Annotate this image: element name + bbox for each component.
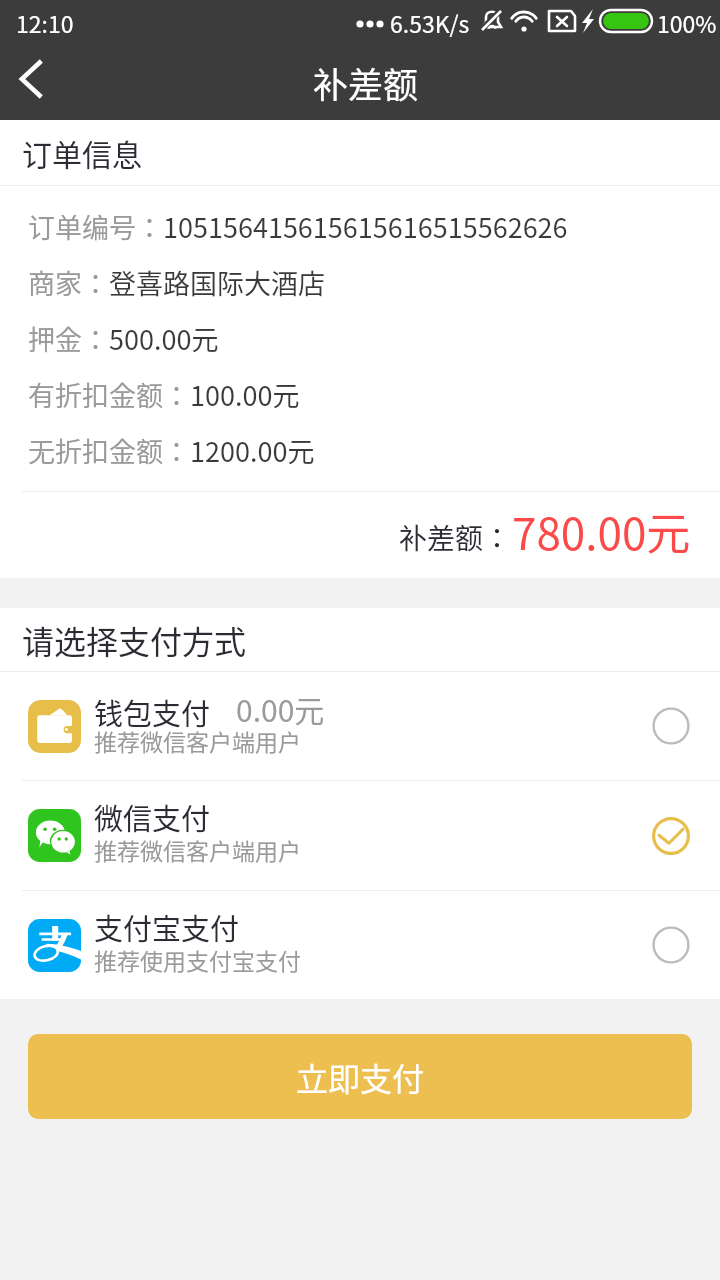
staticText: 6.53K/s — [390, 6, 470, 39]
button[interactable]: 支付宝支付 — [0, 891, 720, 999]
staticText: 订单信息 — [22, 131, 142, 174]
staticText: 支付宝支付 — [94, 906, 240, 948]
staticText: 12:10 — [16, 6, 74, 39]
staticText: 订单编号： — [28, 207, 163, 246]
staticText: 商家： — [28, 263, 109, 302]
button[interactable]: 立即支付 — [28, 1034, 692, 1119]
staticText: 登喜路国际大酒店 — [109, 263, 325, 302]
staticText: 有折扣金额： — [28, 375, 190, 414]
staticText: 1200.00元 — [190, 431, 315, 470]
staticText: 请选择支付方式 — [22, 617, 247, 663]
button[interactable]: 钱包支付 — [0, 672, 720, 780]
staticText: 100.00元 — [190, 375, 300, 414]
staticText: 推荐使用支付宝支付 — [94, 943, 301, 976]
staticText: 100% — [657, 6, 717, 39]
button[interactable]: 微信支付 — [0, 781, 720, 890]
staticText: 推荐微信客户端用户 — [94, 724, 301, 757]
staticText: 无折扣金额： — [28, 431, 190, 470]
staticText: 0.00元 — [236, 687, 325, 730]
staticText: 500.00元 — [109, 319, 219, 358]
staticText: 105156415615615616515562626 — [163, 207, 568, 246]
staticText: 微信支付 — [94, 796, 211, 838]
staticText: 补差额 — [313, 57, 419, 108]
staticText: 补差额： — [399, 517, 512, 558]
staticText: 推荐微信客户端用户 — [94, 833, 301, 866]
staticText: 780.00元 — [512, 499, 691, 563]
staticText: 押金： — [28, 319, 109, 358]
button[interactable]: Back — [0, 50, 64, 114]
staticText: 立即支付 — [296, 1054, 425, 1100]
staticText: 钱包支付 — [94, 691, 211, 733]
